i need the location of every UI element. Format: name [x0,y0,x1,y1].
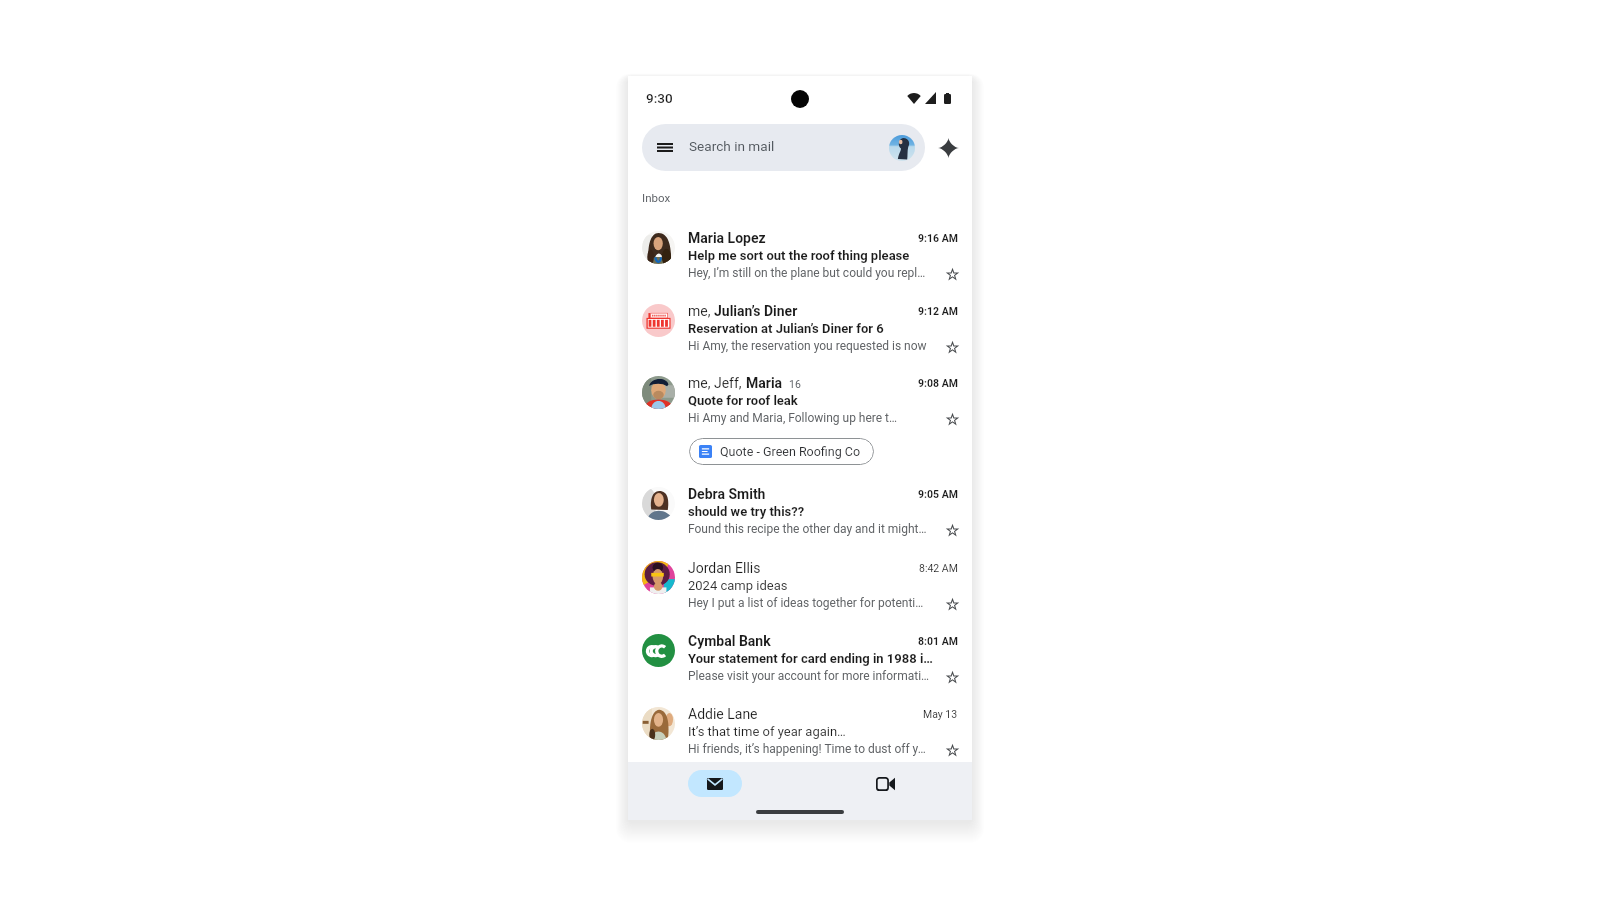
staticText: Debra Smith [688,486,766,502]
button[interactable]: Debra Smith [628,487,972,549]
button[interactable]: Star [940,518,964,542]
button[interactable]: Star [940,665,964,689]
staticText: me, Jeff, [688,375,746,391]
button[interactable]: Star [940,335,964,359]
staticText: Hi Amy and Maria, Following up here t… [688,411,942,425]
staticText: Your statement for card ending in 1988 i… [688,651,945,666]
button[interactable]: Jordan Ellis [628,561,972,623]
staticText: Quote - Green Roofing Co [720,444,861,459]
button[interactable]: Mail [688,770,742,797]
staticText: Maria Lopez [688,230,766,246]
staticText: Cymbal Bank [688,633,771,649]
button[interactable]: Maria Lopez [628,231,972,293]
button[interactable]: Quote - Green Roofing Co [689,438,874,465]
button[interactable]: Star [940,738,964,762]
staticText: Quote for roof leak [688,393,945,408]
staticText: 9:08 AM [918,377,958,389]
staticText: May 13 [923,708,958,720]
staticText: 9:05 AM [918,488,958,500]
staticText: Hey I put a list of ideas together for p… [688,596,942,610]
button[interactable]: Meet [867,770,904,797]
staticText: 9:16 AM [918,232,958,244]
button[interactable]: me, Jeff, [628,376,972,476]
staticText: 8:42 AM [919,562,958,574]
button[interactable]: Cymbal Bank [628,634,972,696]
button[interactable]: Star [940,407,964,431]
staticText: 9:30 [646,90,673,106]
staticText: Addie Lane [688,706,758,722]
staticText: Reservation at Julian’s Diner for 6 [688,321,945,336]
staticText: 2024 camp ideas [688,578,945,593]
button[interactable]: Search in mail [642,124,925,171]
staticText: 9:12 AM [918,305,958,317]
staticText: Found this recipe the other day and it m… [688,522,942,536]
staticText: Search in mail [689,138,775,154]
staticText: Help me sort out the roof thing please [688,248,945,263]
button[interactable]: Gemini [932,132,964,164]
staticText: Maria [746,375,783,391]
button[interactable]: Star [940,592,964,616]
button[interactable]: Account [889,135,915,161]
staticText: Julian’s Diner [714,303,798,319]
button[interactable]: Addie Lane [628,707,972,762]
staticText: It’s that time of year again… [688,724,945,739]
staticText: Please visit your account for more infor… [688,669,942,683]
staticText: Inbox [642,191,671,204]
staticText: Hi Amy, the reservation you requested is… [688,339,942,353]
staticText: me, [688,303,714,319]
button[interactable]: me, [628,304,972,366]
staticText: 16 [789,378,801,390]
staticText: Jordan Ellis [688,560,761,576]
staticText: 8:01 AM [918,635,958,647]
staticText: Hi friends, it’s happening! Time to dust… [688,742,942,756]
staticText: should we try this?? [688,504,945,519]
button[interactable]: Star [940,262,964,286]
staticText: Hey, I’m still on the plane but could yo… [688,266,942,280]
